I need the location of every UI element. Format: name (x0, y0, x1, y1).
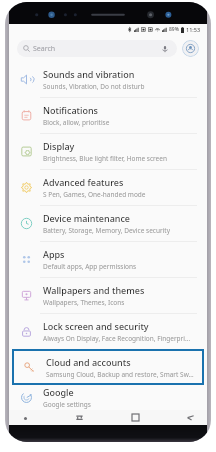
button[interactable]: Lock screen and security (9, 313, 207, 349)
staticText: Apps (43, 248, 65, 260)
staticText: Google (43, 386, 74, 398)
staticText: Advanced features (43, 176, 124, 188)
button[interactable]: Advanced features (9, 169, 207, 205)
staticText: Always On Display, Face Recognition, Fin… (43, 334, 191, 343)
staticText: Block, allow, prioritise (43, 118, 110, 127)
staticText: Battery, Storage, Memory, Device securit… (43, 226, 170, 235)
button[interactable]: Home (127, 410, 143, 425)
button[interactable]: Cloud and accounts (12, 349, 204, 385)
staticText: Wallpapers and themes (43, 284, 145, 296)
staticText: Brightness, Blue light filter, Home scre… (43, 154, 167, 163)
button[interactable]: Search (17, 40, 177, 57)
staticText: Notifications (43, 104, 98, 116)
button[interactable]: Wallpapers and themes (9, 277, 207, 313)
button[interactable]: Google (9, 385, 207, 410)
staticText: 11:53 (186, 26, 201, 33)
button[interactable]: Account (182, 40, 199, 57)
staticText: 89% (169, 26, 179, 33)
staticText: Google settings (43, 400, 91, 409)
staticText: Sounds and vibration (43, 68, 135, 80)
staticText: Lock screen and security (43, 320, 149, 332)
button[interactable]: Notifications (9, 97, 207, 133)
staticText: Wallpapers, Themes, Icons (43, 298, 125, 307)
staticText: Search (33, 44, 56, 54)
button[interactable]: Sounds and vibration (9, 61, 207, 97)
button[interactable]: Recents (71, 410, 87, 425)
button[interactable]: Voice search (159, 43, 171, 55)
staticText: Sounds, Vibration, Do not disturb (43, 82, 145, 91)
button[interactable]: Apps (9, 241, 207, 277)
staticText: Display (43, 140, 75, 152)
staticText: Cloud and accounts (46, 356, 131, 368)
staticText: Samsung Cloud, Backup and restore, Smart… (46, 370, 194, 379)
button[interactable]: Show keyboard (18, 411, 32, 425)
button[interactable]: Display (9, 133, 207, 169)
button[interactable]: Device maintenance (9, 205, 207, 241)
staticText: S Pen, Games, One-handed mode (43, 190, 146, 199)
staticText: Default apps, App permissions (43, 262, 137, 271)
staticText: Device maintenance (43, 212, 131, 224)
button[interactable]: Back (182, 410, 198, 425)
